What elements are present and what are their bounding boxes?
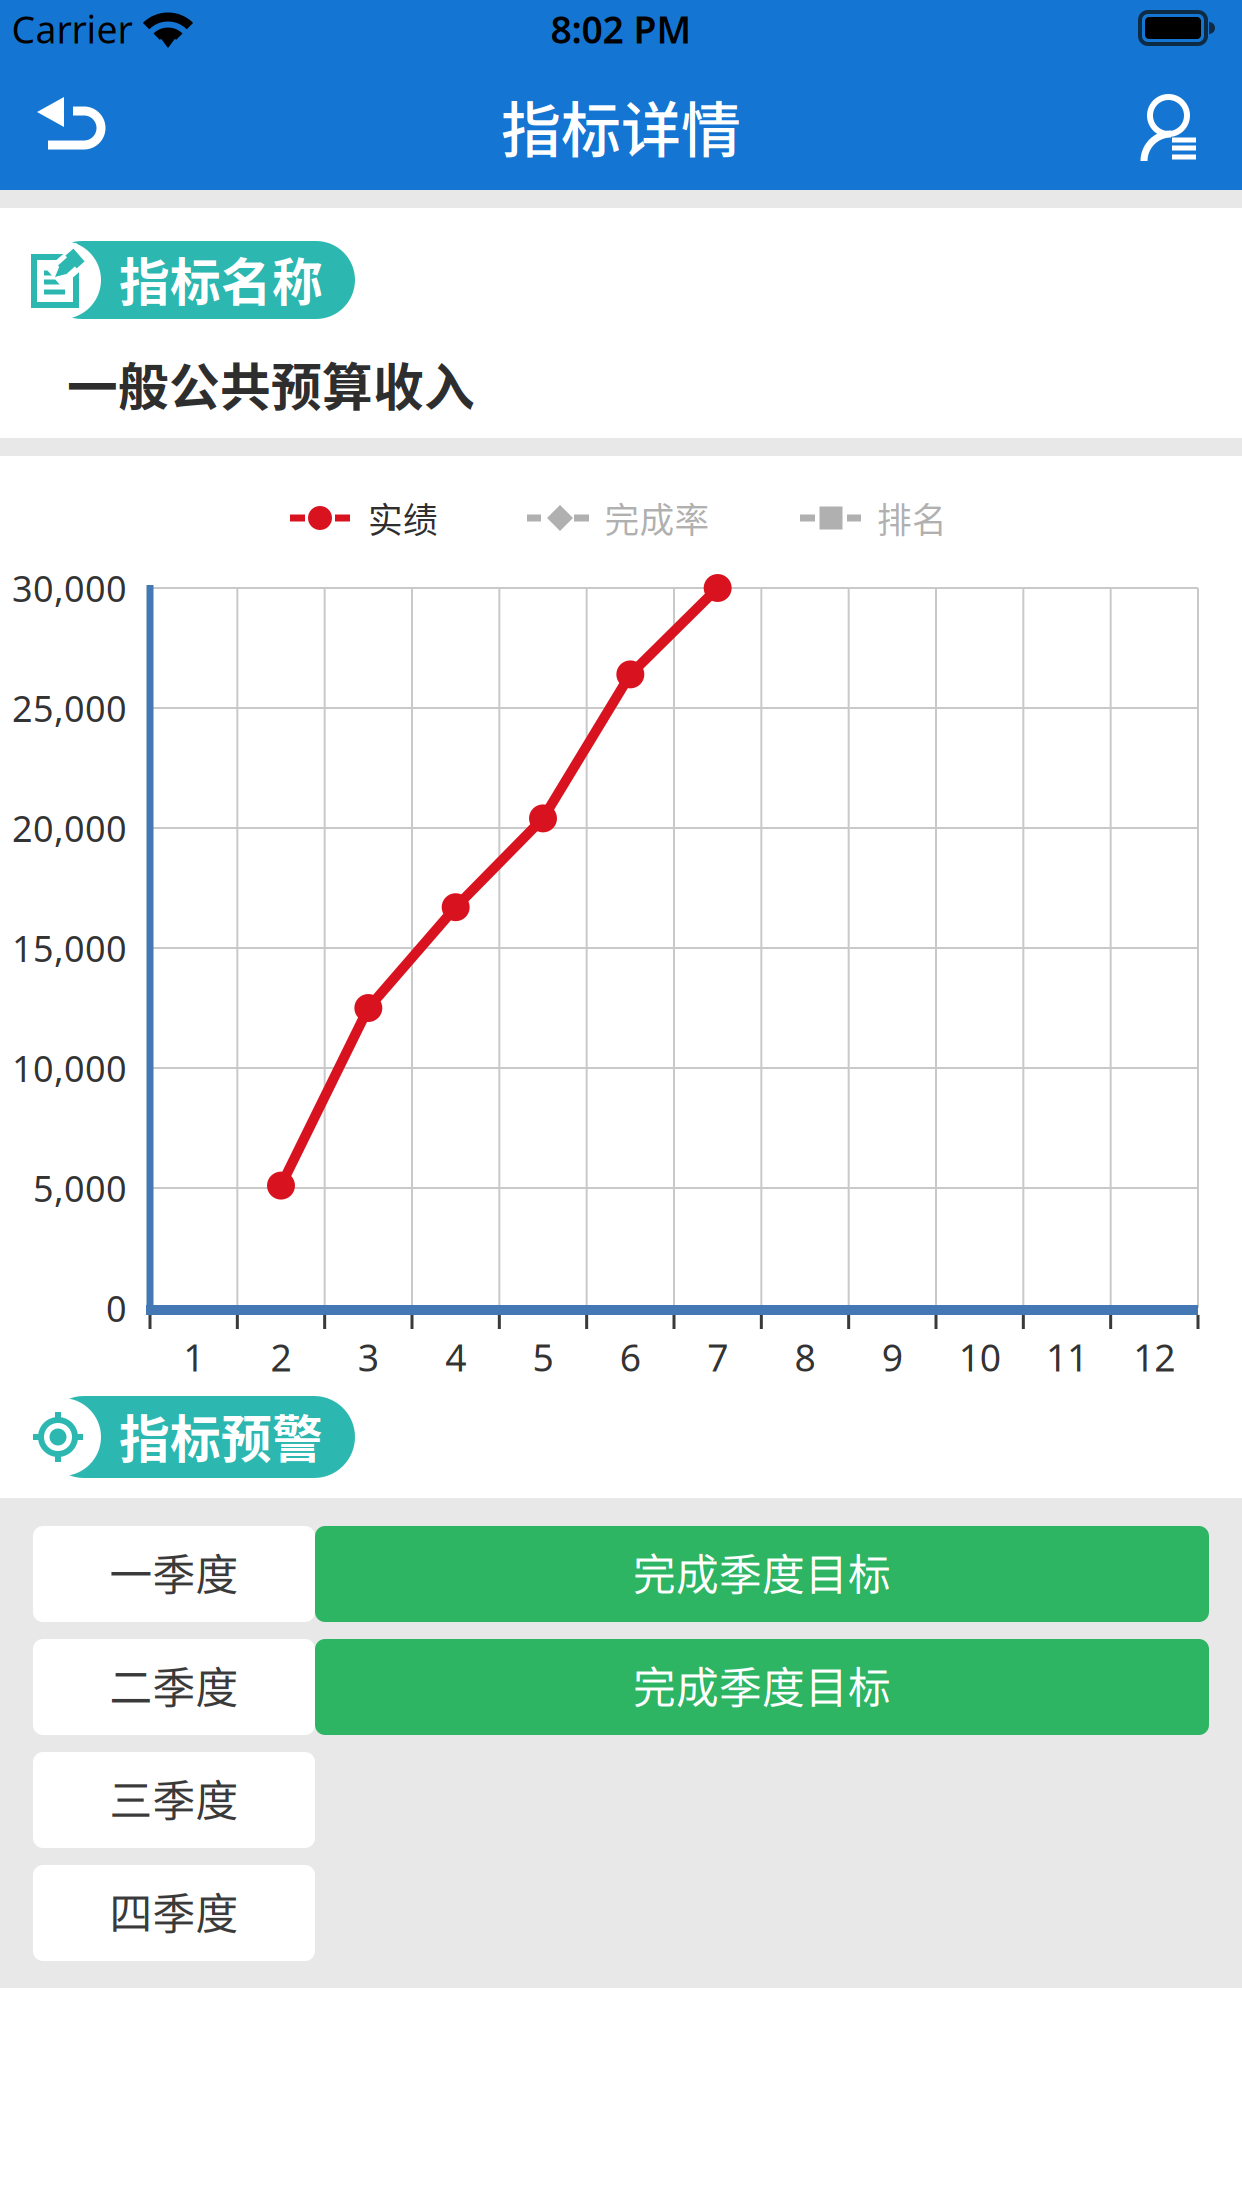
staticText: 实绩 xyxy=(368,493,438,543)
staticText: 三季度 xyxy=(109,1767,238,1829)
button[interactable]: Back xyxy=(17,71,127,181)
staticText: 10 xyxy=(959,1332,1001,1382)
staticText: 5,000 xyxy=(33,1164,127,1212)
staticText: 二季度 xyxy=(109,1654,238,1716)
staticText: Carrier xyxy=(11,4,132,54)
staticText: 指标详情 xyxy=(501,83,741,169)
staticText: 2 xyxy=(270,1332,291,1382)
staticText: 6 xyxy=(620,1332,641,1382)
button[interactable]: Contacts xyxy=(1115,75,1225,185)
staticText: 7 xyxy=(707,1332,728,1382)
staticText: 一季度 xyxy=(109,1541,238,1603)
staticText: 4 xyxy=(445,1332,466,1382)
staticText: 12 xyxy=(1133,1332,1175,1382)
staticText: 8:02 PM xyxy=(550,4,691,54)
staticText: 5 xyxy=(532,1332,553,1382)
staticText: 8 xyxy=(794,1332,815,1382)
staticText: 10,000 xyxy=(12,1044,127,1092)
staticText: 指标预警 xyxy=(119,1399,323,1473)
staticText: 1 xyxy=(183,1332,204,1382)
staticText: 20,000 xyxy=(12,804,127,852)
staticText: 完成季度目标 xyxy=(633,1654,891,1716)
staticText: 9 xyxy=(882,1332,903,1382)
staticText: 15,000 xyxy=(12,924,127,972)
staticText: 0 xyxy=(106,1284,127,1332)
staticText: 完成率 xyxy=(604,493,709,543)
staticText: 11 xyxy=(1046,1332,1088,1382)
staticText: 25,000 xyxy=(12,684,127,732)
staticText: 一般公共预算收入 xyxy=(67,347,475,421)
staticText: 3 xyxy=(358,1332,379,1382)
staticText: 30,000 xyxy=(12,564,127,612)
staticText: 排名 xyxy=(877,493,947,543)
staticText: 完成季度目标 xyxy=(633,1541,891,1603)
staticText: 四季度 xyxy=(109,1880,238,1942)
staticText: 指标名称 xyxy=(119,242,323,316)
